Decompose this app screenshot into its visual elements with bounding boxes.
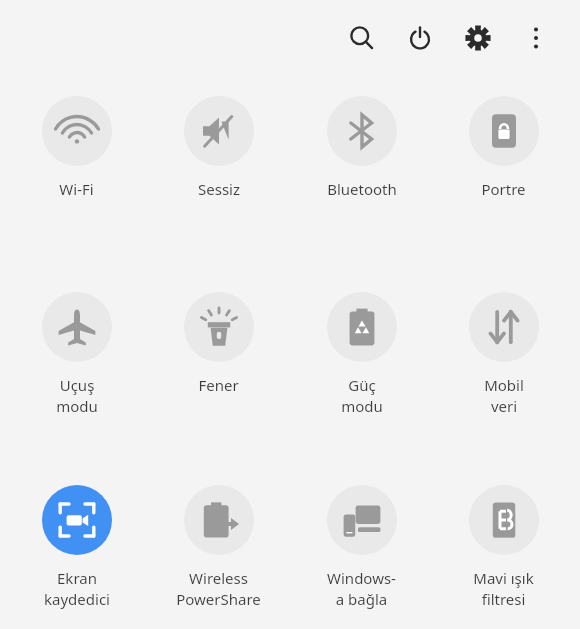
button[interactable]: Wi-Fi	[10, 96, 143, 199]
staticText: Fener	[198, 375, 239, 395]
staticText: Mavi ışık filtresi	[473, 568, 534, 610]
button[interactable]: Windows- a bağla	[295, 485, 428, 610]
staticText: Ekran kaydedici	[44, 568, 110, 610]
button[interactable]: Power off	[396, 14, 444, 62]
staticText: Uçuş modu	[56, 375, 98, 417]
button[interactable]: More options	[512, 14, 560, 62]
button[interactable]: Bluetooth	[295, 96, 428, 199]
staticText: Wi-Fi	[59, 179, 94, 199]
button[interactable]: Mavi ışık filtresi	[437, 485, 570, 610]
button[interactable]: Fener	[152, 292, 285, 395]
staticText: Bluetooth	[327, 179, 397, 199]
button[interactable]: Ekran kaydedici	[10, 485, 143, 610]
button[interactable]: Wireless PowerShare	[152, 485, 285, 610]
button[interactable]: Sessiz	[152, 96, 285, 199]
staticText: Sessiz	[198, 179, 240, 199]
button[interactable]: Portre	[437, 96, 570, 199]
staticText: Wireless PowerShare	[176, 568, 261, 610]
button[interactable]: Uçuş modu	[10, 292, 143, 417]
staticText: Portre	[481, 179, 526, 199]
staticText: Güç modu	[341, 375, 383, 417]
staticText: Windows- a bağla	[327, 568, 396, 610]
button[interactable]: Güç modu	[295, 292, 428, 417]
staticText: Mobil veri	[484, 375, 524, 417]
button[interactable]: Mobil veri	[437, 292, 570, 417]
button[interactable]: Settings	[454, 14, 502, 62]
button[interactable]: Search	[338, 14, 386, 62]
